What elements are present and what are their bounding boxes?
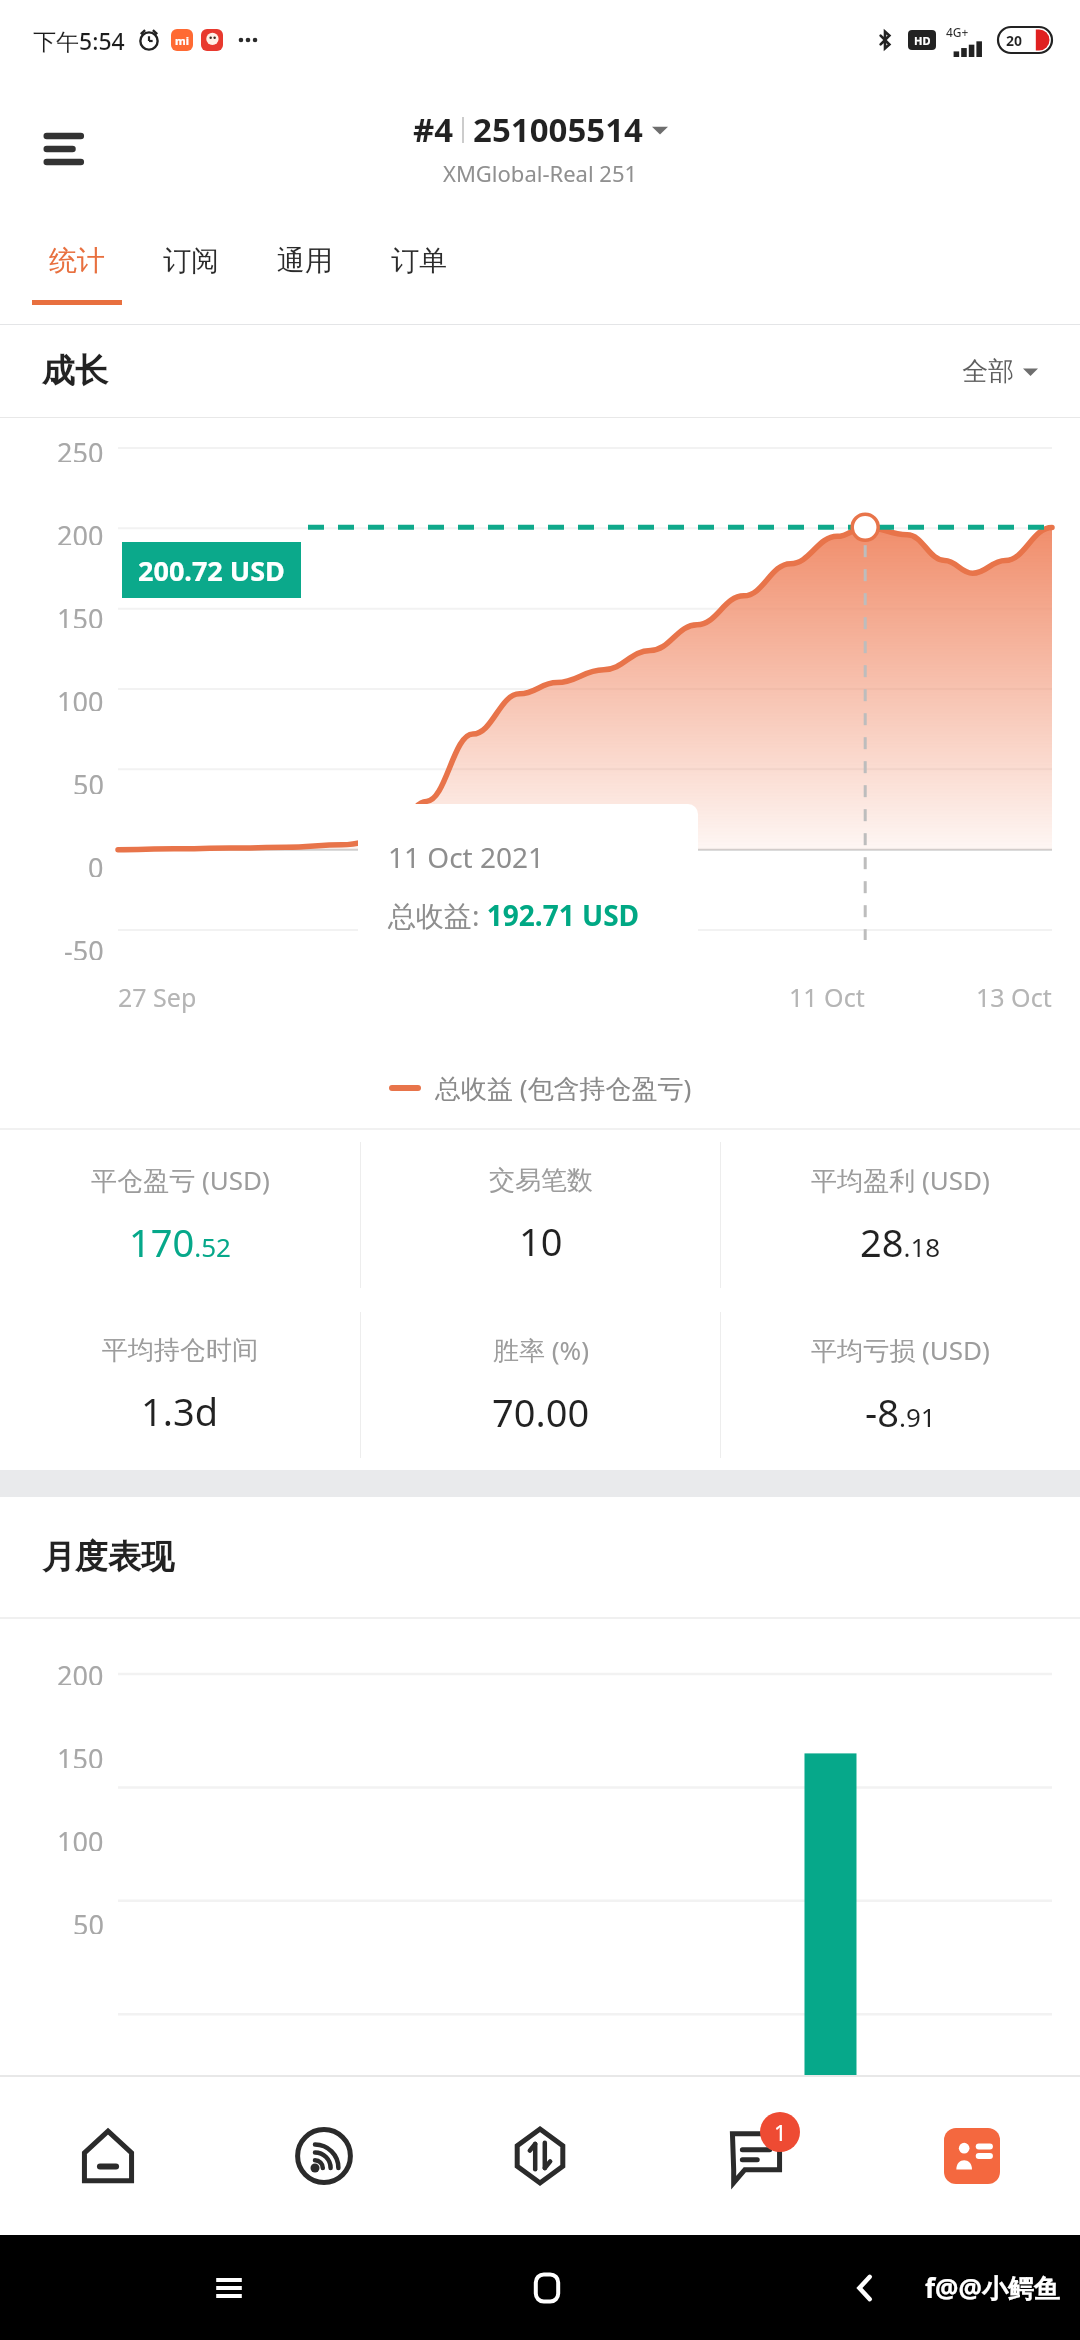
- button[interactable]: 交易笔数: [361, 1130, 720, 1300]
- button[interactable]: 通用: [248, 218, 362, 324]
- staticText: f@@小鳄鱼: [925, 2270, 1060, 2306]
- staticText: 平均盈利 (USD): [811, 1162, 990, 1198]
- button[interactable]: Recents: [199, 2258, 259, 2318]
- button[interactable]: 平均持仓时间: [0, 1300, 360, 1470]
- staticText: 月度表现: [42, 1536, 174, 1578]
- staticText: 13 Oct: [976, 980, 1052, 1014]
- button[interactable]: 统计: [20, 218, 134, 324]
- staticText: 订单: [391, 243, 447, 278]
- staticText: 200.72 USD: [138, 552, 285, 589]
- button[interactable]: Trade: [432, 2077, 648, 2235]
- staticText: 平仓盈亏 (USD): [91, 1162, 270, 1198]
- staticText: 成长: [42, 350, 108, 392]
- staticText: 150: [57, 1740, 104, 1768]
- staticText: 10: [519, 1215, 563, 1267]
- button[interactable]: 订单: [362, 218, 476, 324]
- staticText: 150: [57, 600, 104, 628]
- button[interactable]: Messages: [648, 2077, 864, 2235]
- staticText: 251005514: [473, 107, 643, 152]
- staticText: 28.18: [860, 1216, 941, 1268]
- staticText: XMGlobal-Real 251: [443, 158, 638, 188]
- staticText: 1: [774, 2117, 787, 2147]
- staticText: 50: [73, 766, 104, 794]
- staticText: 平均亏损 (USD): [811, 1332, 990, 1368]
- staticText: 通用: [277, 243, 333, 278]
- button[interactable]: Signals: [216, 2077, 432, 2235]
- staticText: 50: [73, 1906, 104, 1934]
- staticText: 订阅: [163, 243, 219, 278]
- staticText: 胜率 (%): [493, 1332, 589, 1368]
- button[interactable]: 月度表现: [42, 1497, 1080, 1617]
- button[interactable]: 成长: [42, 325, 1038, 417]
- staticText: #4: [413, 107, 454, 152]
- staticText: 100: [57, 1823, 104, 1851]
- staticText: 0: [88, 849, 104, 877]
- staticText: 统计: [49, 243, 105, 278]
- staticText: 200: [57, 517, 104, 545]
- staticText: 总收益 (包含持仓盈亏): [435, 1070, 692, 1106]
- staticText: 170.52: [129, 1216, 231, 1268]
- staticText: mi: [175, 33, 190, 48]
- staticText: 下午5:54: [33, 25, 125, 56]
- staticText: 1.3d: [141, 1385, 219, 1437]
- staticText: 11 Oct 2021: [388, 838, 545, 876]
- button[interactable]: Menu: [28, 110, 106, 188]
- button[interactable]: #4: [413, 107, 668, 188]
- staticText: 全部: [962, 355, 1014, 388]
- staticText: 总收益: 192.71 USD: [388, 896, 640, 934]
- staticText: 100: [57, 683, 104, 711]
- button[interactable]: 订阅: [134, 218, 248, 324]
- staticText: 平均持仓时间: [102, 1334, 258, 1367]
- button[interactable]: 胜率 (%): [361, 1300, 720, 1470]
- button[interactable]: Profile: [864, 2077, 1080, 2235]
- staticText: 27 Sep: [118, 980, 197, 1014]
- staticText: HD: [914, 33, 931, 48]
- staticText: 70.00: [492, 1386, 590, 1438]
- staticText: 交易笔数: [489, 1164, 593, 1197]
- staticText: 200: [57, 1657, 104, 1685]
- button[interactable]: Home: [0, 2077, 216, 2235]
- button[interactable]: Back: [835, 2258, 895, 2318]
- staticText: 250: [57, 434, 104, 462]
- staticText: -50: [64, 932, 104, 960]
- staticText: 20: [1006, 31, 1023, 50]
- button[interactable]: 平均盈利 (USD): [721, 1130, 1080, 1300]
- staticText: -8.91: [865, 1386, 936, 1438]
- button[interactable]: 平均亏损 (USD): [721, 1300, 1080, 1470]
- staticText: 4G+: [946, 24, 969, 40]
- staticText: 11 Oct: [789, 980, 865, 1014]
- button[interactable]: 平仓盈亏 (USD): [0, 1130, 360, 1300]
- button[interactable]: Home: [517, 2258, 577, 2318]
